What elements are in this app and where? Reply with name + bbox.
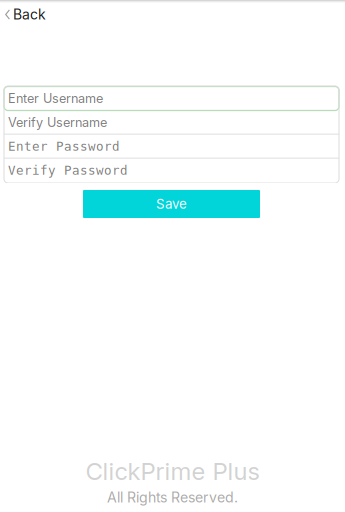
staticText: Back [13,6,46,23]
staticText: Verify Password [8,163,128,178]
button[interactable]: Enter Username [4,86,339,110]
staticText: Save [156,196,187,212]
staticText: All Rights Reserved. [107,489,238,506]
staticText: Enter Username [8,91,103,106]
button[interactable]: Back [0,3,120,26]
button[interactable]: Enter Password [4,134,339,158]
button[interactable]: Verify Username [4,110,339,134]
button[interactable]: Verify Password [4,158,339,182]
staticText: ClickPrime Plus [85,457,259,486]
staticText: Verify Username [8,115,107,130]
staticText: Enter Password [8,139,120,154]
button[interactable]: Save [83,190,260,218]
